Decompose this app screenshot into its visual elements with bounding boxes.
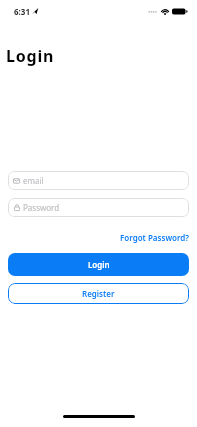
button[interactable]: Password — [8, 198, 189, 217]
staticText: email — [23, 175, 44, 186]
staticText: Login — [88, 259, 110, 270]
staticText: Login — [6, 45, 55, 67]
staticText: Password — [23, 202, 60, 213]
button[interactable]: Register — [8, 283, 189, 304]
staticText: Register — [82, 288, 115, 299]
staticText: 6:31 — [14, 6, 30, 16]
button[interactable]: email — [8, 171, 189, 190]
button[interactable]: Login — [8, 253, 189, 276]
button[interactable]: Forgot Password? — [120, 232, 189, 243]
